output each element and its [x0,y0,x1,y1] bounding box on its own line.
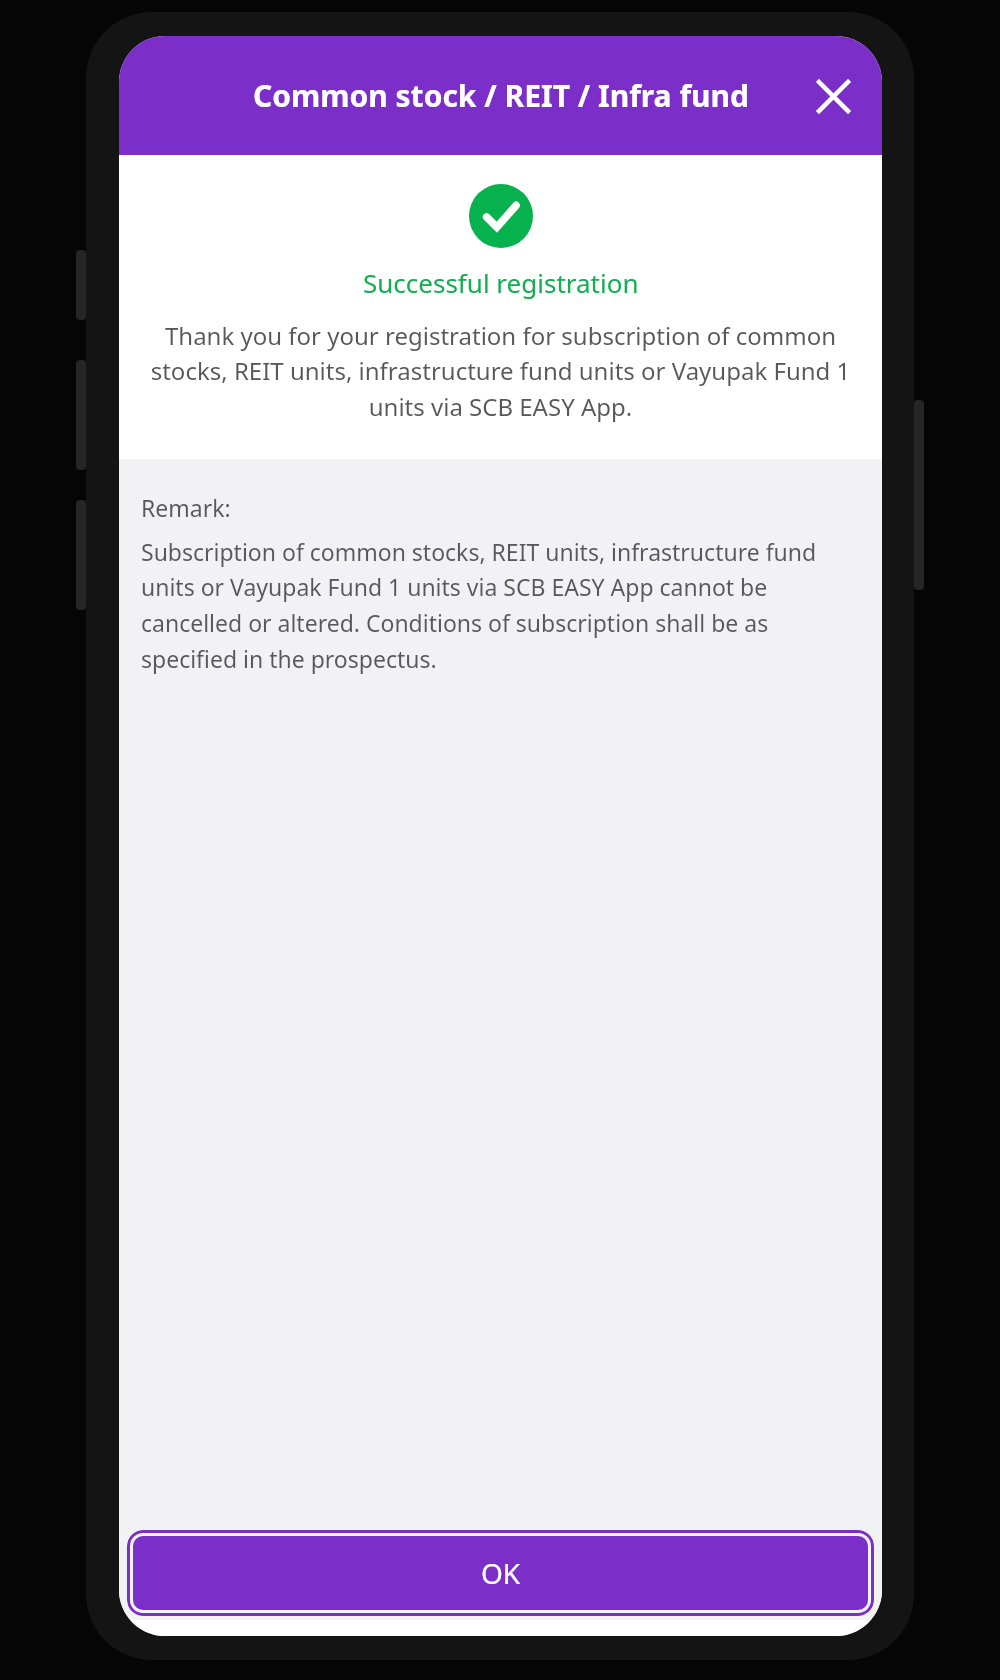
staticText: Common stock / REIT / Infra fund [253,75,749,116]
staticText: OK [481,1554,521,1592]
button[interactable]: Close [804,67,862,125]
staticText: Remark: [141,492,231,523]
staticText: Thank you for your registration for subs… [145,319,856,423]
staticText: Subscription of common stocks, REIT unit… [141,536,862,675]
button[interactable]: OK [133,1536,868,1610]
staticText: Successful registration [363,265,639,300]
